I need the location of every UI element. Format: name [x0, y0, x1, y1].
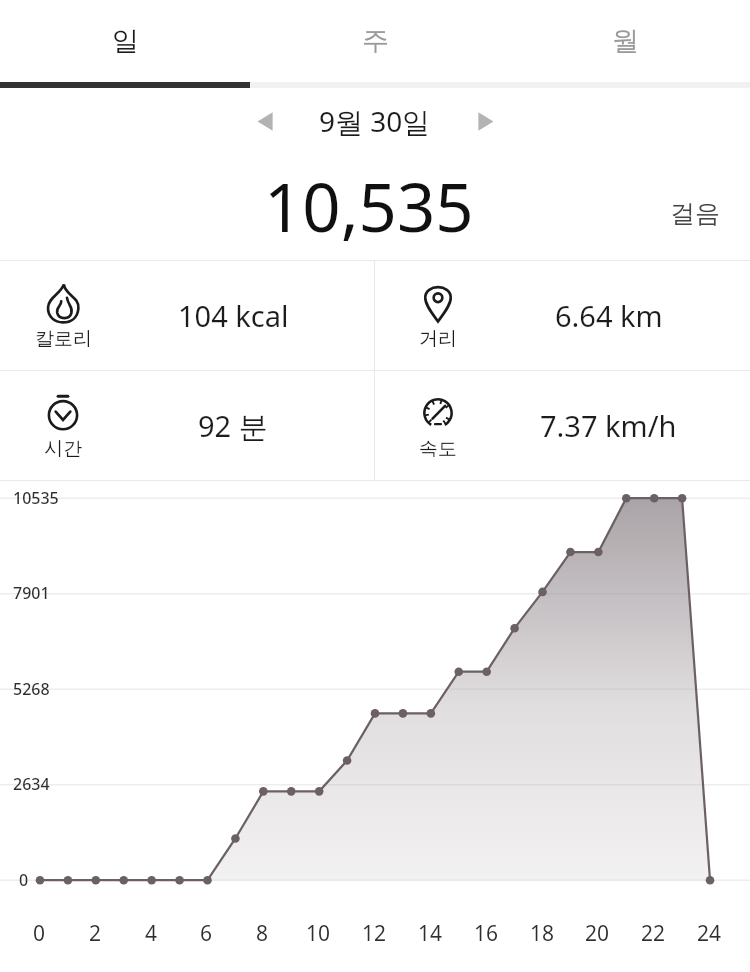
staticText: 속도	[419, 437, 457, 461]
staticText: 7901	[13, 582, 50, 604]
staticText: 12	[362, 919, 387, 948]
staticText: 10,535	[264, 160, 474, 251]
staticText: 10535	[13, 487, 59, 509]
staticText: 18	[530, 919, 555, 948]
button[interactable]: 일	[0, 0, 250, 82]
staticText: 2	[89, 919, 102, 948]
staticText: 6.64 km	[555, 296, 663, 335]
staticText: 14	[418, 919, 443, 948]
button[interactable]: 이전 날짜	[239, 95, 291, 147]
staticText: 9월 30일	[319, 102, 431, 140]
staticText: 104 kcal	[178, 296, 289, 335]
staticText: 7.37 km/h	[540, 406, 677, 445]
staticText: 16	[474, 919, 499, 948]
staticText: 0	[19, 869, 29, 891]
staticText: 20	[585, 919, 610, 948]
staticText: 4	[145, 919, 158, 948]
staticText: 월	[612, 24, 639, 58]
staticText: 거리	[419, 327, 457, 351]
staticText: 5268	[13, 678, 50, 700]
staticText: 10	[306, 919, 331, 948]
staticText: 24	[697, 919, 722, 948]
staticText: 8	[256, 919, 269, 948]
staticText: 시간	[44, 437, 82, 461]
staticText: 0	[33, 919, 46, 948]
staticText: 걸음	[670, 198, 720, 229]
staticText: 일	[112, 24, 139, 58]
button[interactable]: 주	[250, 0, 500, 82]
button[interactable]: 월	[500, 0, 750, 82]
button[interactable]: 거리	[375, 261, 750, 370]
staticText: 22	[641, 919, 666, 948]
button[interactable]: 속도	[375, 371, 750, 480]
button[interactable]: 시간	[0, 371, 374, 480]
staticText: 6	[200, 919, 213, 948]
staticText: 2634	[13, 773, 50, 795]
button[interactable]: 다음 날짜	[459, 95, 511, 147]
staticText: 칼로리	[35, 327, 92, 351]
staticText: 92 분	[198, 406, 268, 446]
button[interactable]: 칼로리	[0, 261, 374, 370]
staticText: 주	[362, 24, 389, 58]
